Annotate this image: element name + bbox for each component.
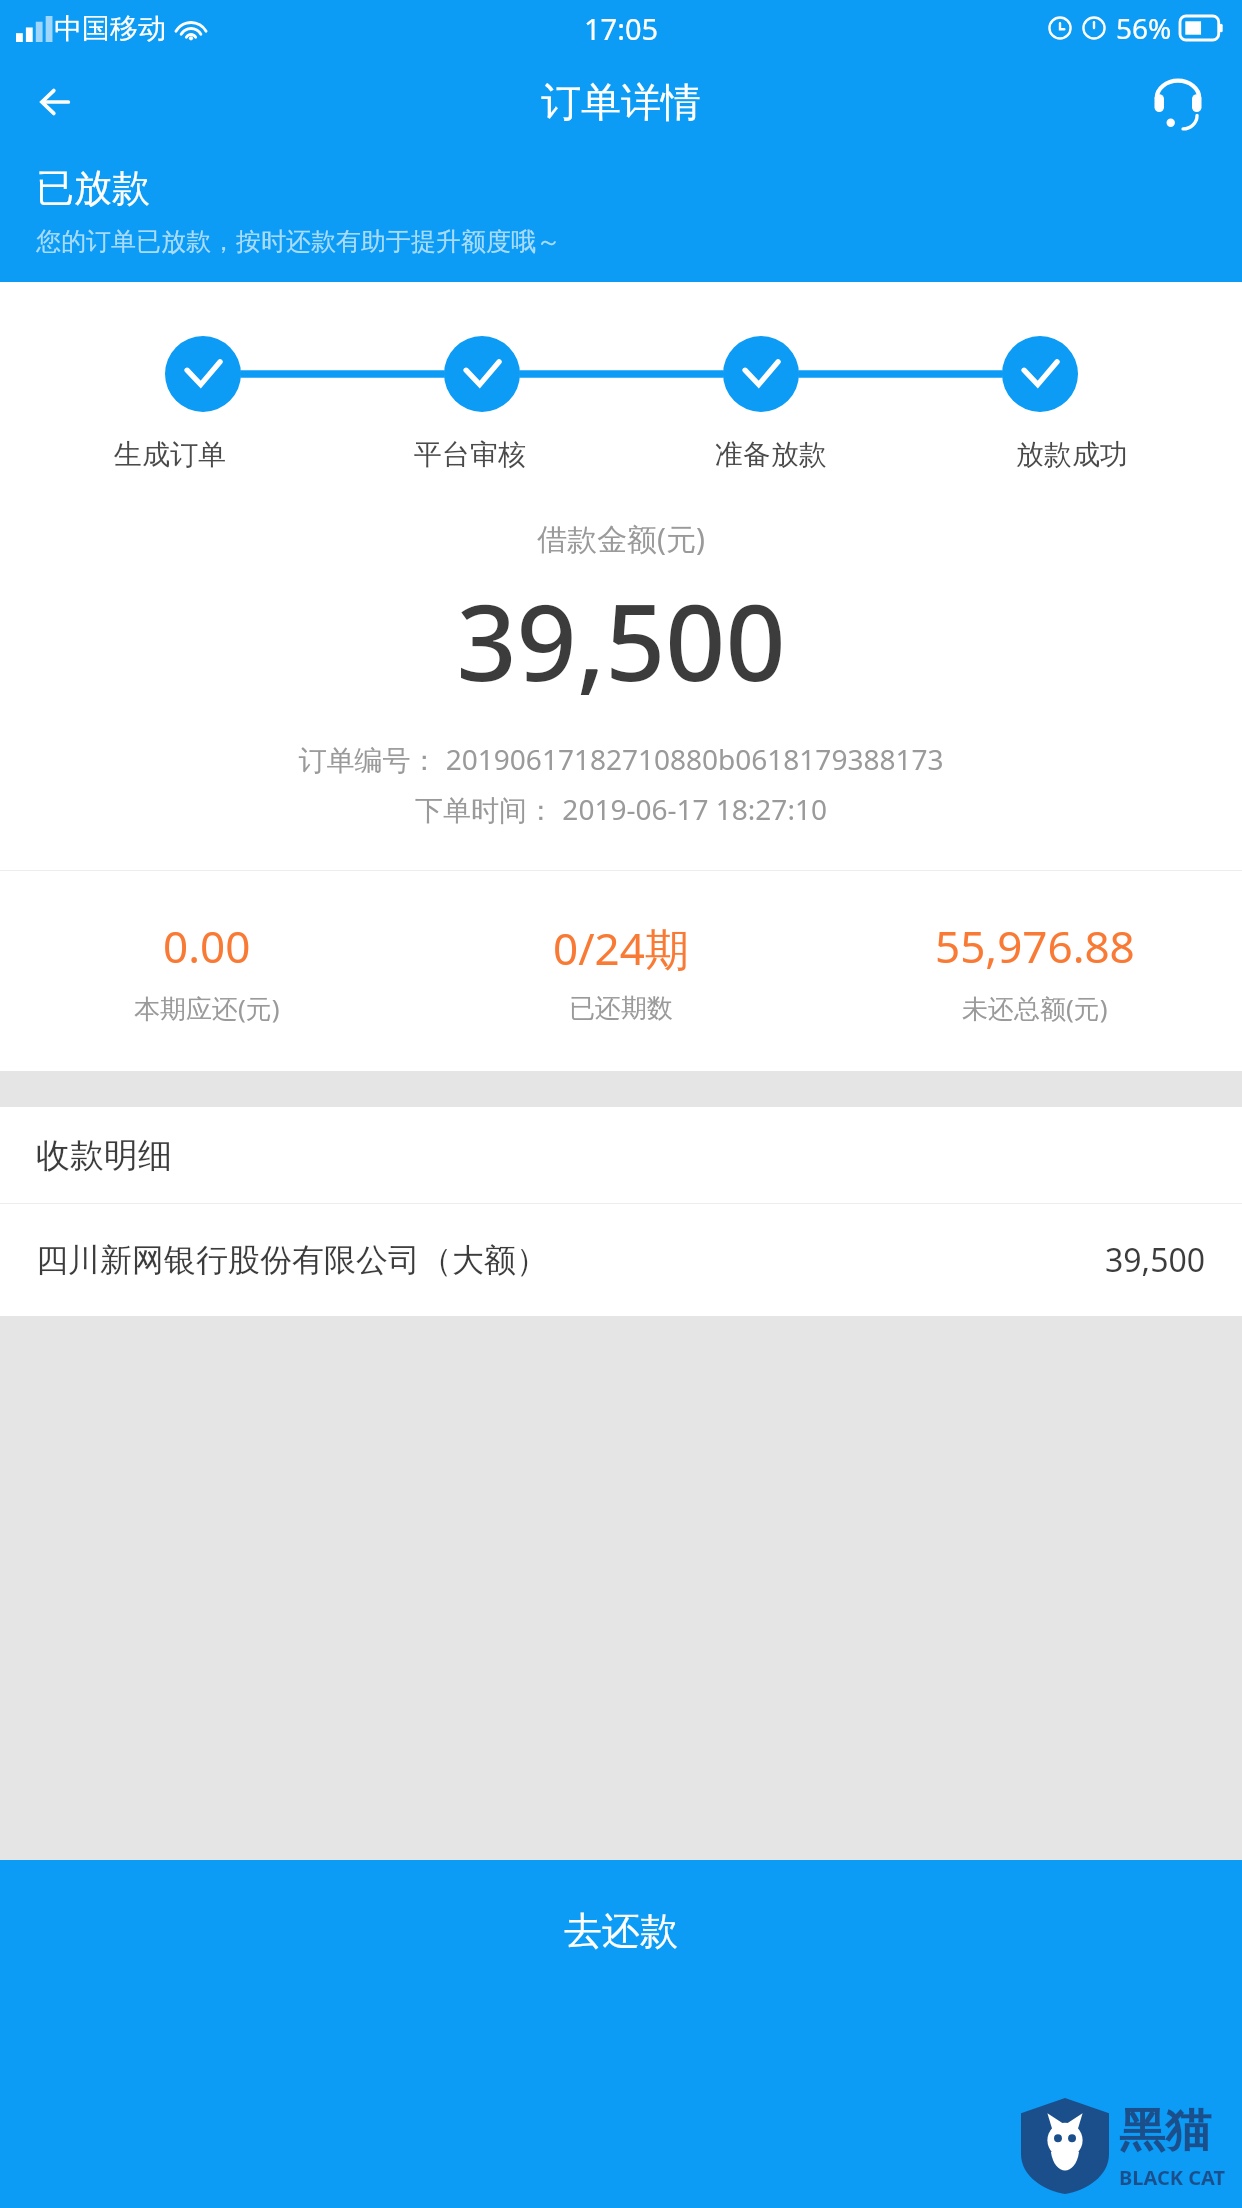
staticText: 0/24期 <box>553 918 689 978</box>
staticText: 借款金额(元) <box>0 518 1242 559</box>
staticText: 黑猫 <box>1119 2102 1211 2160</box>
staticText: BLACK CAT <box>1119 2164 1226 2191</box>
button[interactable]: Customer service <box>1138 62 1218 142</box>
button[interactable]: 0.00 <box>0 916 414 1026</box>
staticText: 55,976.88 <box>935 916 1135 976</box>
button[interactable]: 四川新网银行股份有限公司（大额） <box>0 1204 1242 1316</box>
staticText: 四川新网银行股份有限公司（大额） <box>36 1240 548 1280</box>
staticText: 已还期数 <box>569 992 673 1025</box>
staticText: 39,500 <box>0 569 1242 712</box>
button[interactable]: 0/24期 <box>414 918 828 1025</box>
staticText: 准备放款 <box>715 437 827 472</box>
staticText: 您的订单已放款，按时还款有助于提升额度哦～ <box>36 226 561 257</box>
staticText: 放款成功 <box>1016 437 1128 472</box>
staticText: 去还款 <box>564 1907 678 1955</box>
staticText: 0.00 <box>163 916 251 976</box>
button[interactable]: 55,976.88 <box>828 916 1242 1026</box>
button[interactable]: Back <box>18 64 94 140</box>
staticText: 39,500 <box>1105 1238 1206 1282</box>
staticText: 生成订单 <box>114 437 226 472</box>
button[interactable]: 去还款 <box>0 1860 1242 2208</box>
staticText: 下单时间： 2019-06-17 18:27:10 <box>0 790 1242 828</box>
staticText: 17:05 <box>584 9 659 48</box>
staticText: 平台审核 <box>414 437 526 472</box>
staticText: 中国移动 <box>54 11 166 46</box>
staticText: 56% <box>1116 9 1172 47</box>
staticText: 本期应还(元) <box>134 990 280 1026</box>
staticText: 收款明细 <box>36 1134 172 1177</box>
staticText: 未还总额(元) <box>962 990 1108 1026</box>
staticText: 已放款 <box>36 164 150 212</box>
staticText: 订单编号： 20190617182710880b0618179388173 <box>0 740 1242 778</box>
staticText: 订单详情 <box>541 77 701 127</box>
